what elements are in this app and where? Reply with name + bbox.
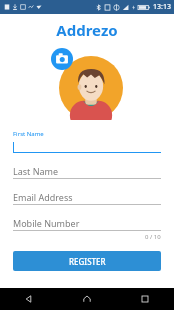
staticText: REGISTER — [69, 256, 106, 267]
staticText: Email Address — [13, 191, 73, 203]
button[interactable]: Recent apps — [116, 288, 174, 310]
button[interactable]: Last Name — [13, 164, 161, 179]
staticText: Last Name — [13, 165, 59, 177]
button[interactable]: Email Address — [13, 190, 161, 205]
staticText: Mobile Number — [13, 217, 80, 229]
staticText: First Name — [13, 130, 44, 138]
staticText: 13:13 — [153, 2, 171, 12]
button[interactable]: First Name — [13, 130, 161, 153]
button[interactable]: Home — [58, 288, 116, 310]
staticText: Addrezo — [56, 20, 118, 40]
staticText: 0 / 10 — [145, 233, 161, 241]
button[interactable]: REGISTER — [13, 251, 161, 271]
button[interactable]: Change profile photo — [51, 48, 123, 120]
button[interactable]: Mobile Number — [13, 216, 161, 231]
button[interactable]: Back — [0, 288, 58, 310]
